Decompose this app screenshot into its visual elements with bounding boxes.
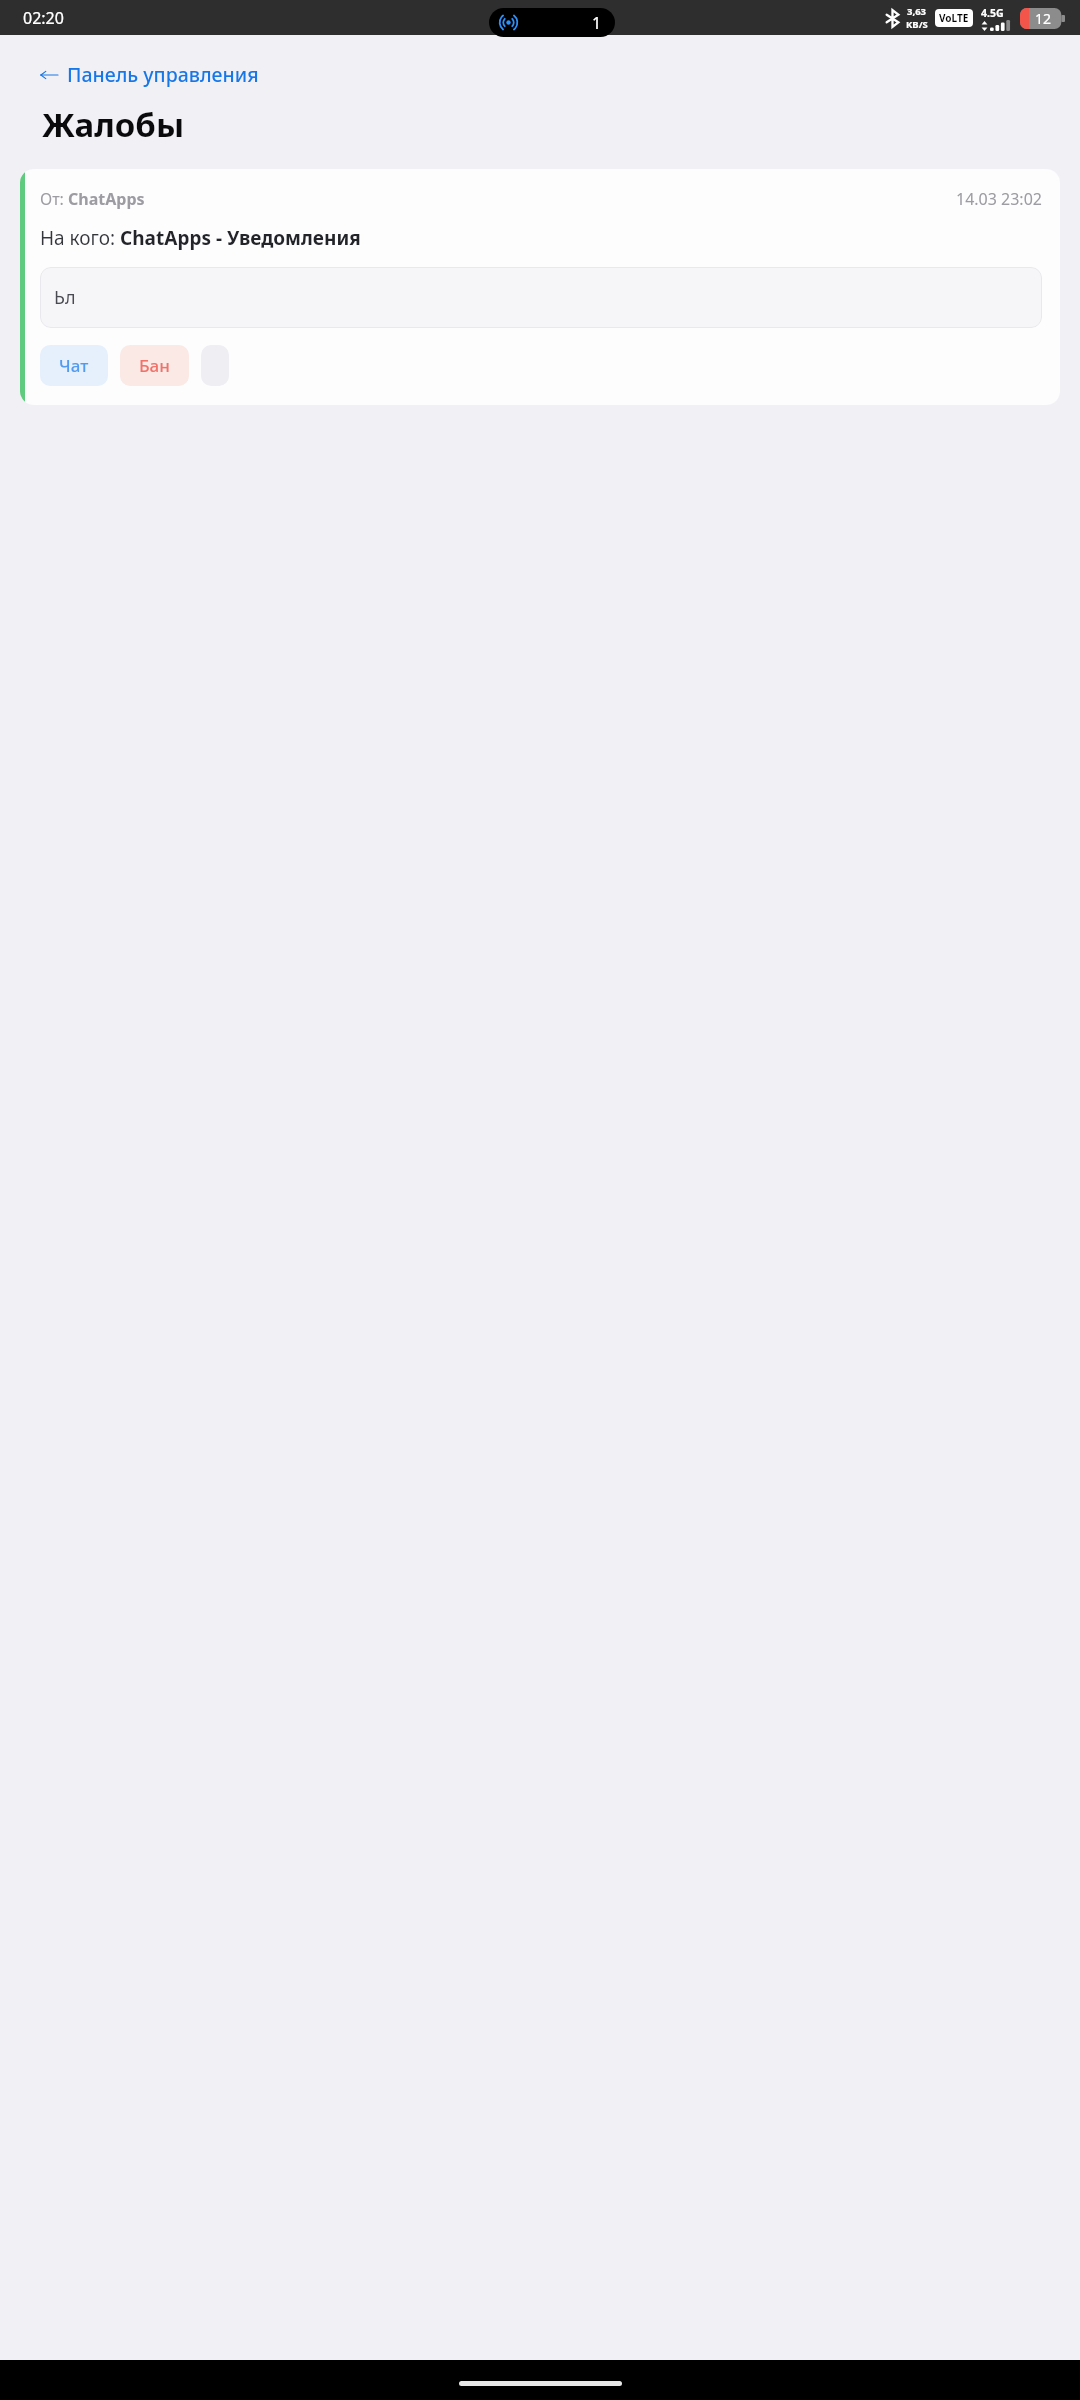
staticText: Ьл [54, 285, 76, 310]
button[interactable]: Панель управления [34, 57, 265, 92]
staticText: Бан [139, 354, 170, 377]
staticText: Жалобы [42, 102, 185, 147]
staticText: Панель управления [67, 61, 259, 88]
staticText: От: ChatApps [40, 188, 145, 210]
staticText: VoLTE [939, 11, 969, 25]
button[interactable]: Бан [120, 345, 189, 386]
staticText: Чат [59, 354, 89, 377]
staticText: 02:20 [23, 7, 64, 29]
button[interactable]: Ещё [201, 345, 229, 386]
staticText: 12 [1035, 9, 1052, 28]
staticText: 4.5G [981, 6, 1004, 20]
staticText: 3,63 [907, 5, 927, 18]
staticText: На кого: ChatApps - Уведомления [40, 225, 361, 251]
staticText: 1 [592, 12, 602, 34]
staticText: KB/S [906, 18, 928, 31]
button[interactable]: От: ChatApps [20, 169, 1060, 405]
staticText: 14.03 23:02 [956, 188, 1042, 210]
button[interactable]: Чат [40, 345, 108, 386]
